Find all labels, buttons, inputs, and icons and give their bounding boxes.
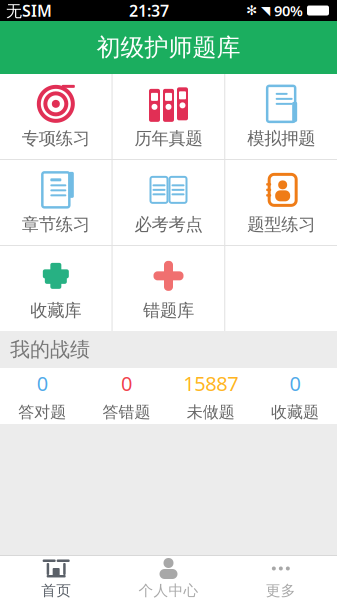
- staticText: 答对题: [18, 402, 66, 422]
- staticText: 题型练习: [247, 214, 315, 235]
- staticText: 答错题: [102, 402, 150, 422]
- button[interactable]: 章节练习: [0, 160, 112, 245]
- button[interactable]: 模拟押题: [225, 74, 337, 159]
- button[interactable]: 题型练习: [225, 160, 337, 245]
- staticText: 0: [37, 370, 48, 396]
- staticText: 收藏库: [30, 300, 81, 321]
- button[interactable]: 首页: [0, 556, 112, 600]
- staticText: 章节练习: [22, 214, 90, 235]
- staticText: 0: [289, 370, 300, 396]
- staticText: 未做题: [187, 402, 235, 422]
- staticText: ◥: [261, 4, 270, 17]
- staticText: 15887: [183, 370, 238, 396]
- staticText: ✻: [246, 3, 257, 18]
- button[interactable]: 个人中心: [112, 556, 225, 600]
- staticText: 错题库: [143, 300, 194, 321]
- staticText: 初级护师题库: [96, 33, 240, 62]
- button[interactable]: 更多: [225, 556, 337, 600]
- staticText: 0: [121, 370, 132, 396]
- button[interactable]: 错题库: [113, 246, 224, 331]
- staticText: 模拟押题: [247, 128, 315, 149]
- staticText: 历年真题: [134, 128, 202, 149]
- button[interactable]: 历年真题: [113, 74, 224, 159]
- button[interactable]: 必考考点: [113, 160, 224, 245]
- staticText: 收藏题: [271, 402, 319, 422]
- button[interactable]: 专项练习: [0, 74, 112, 159]
- staticText: 必考考点: [134, 214, 202, 235]
- staticText: 我的战绩: [10, 337, 90, 362]
- button[interactable]: 收藏库: [0, 246, 112, 331]
- staticText: 首页: [41, 581, 71, 599]
- staticText: 个人中心: [138, 581, 198, 599]
- staticText: 21:37: [129, 0, 169, 21]
- staticText: 90%: [274, 1, 303, 20]
- staticText: 更多: [266, 581, 296, 599]
- staticText: 专项练习: [22, 128, 90, 149]
- staticText: 无SIM: [6, 0, 52, 21]
